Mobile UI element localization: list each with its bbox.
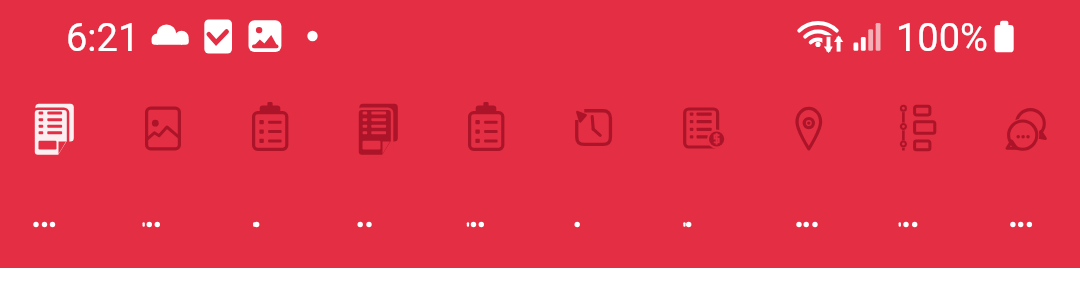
button[interactable]: Messages xyxy=(972,94,1080,236)
button[interactable]: History xyxy=(540,94,648,236)
staticText: 6:21 xyxy=(66,16,140,61)
button[interactable]: Invoices xyxy=(648,94,756,236)
button[interactable]: Places xyxy=(756,94,864,236)
button[interactable]: Timeline xyxy=(864,94,972,236)
button[interactable]: Notes xyxy=(324,94,432,236)
button[interactable]: Checklists xyxy=(216,94,324,236)
button[interactable]: Photos xyxy=(108,94,216,236)
button[interactable]: Documents xyxy=(0,94,108,236)
staticText: 100% xyxy=(896,16,988,61)
button[interactable]: Tasks xyxy=(432,94,540,236)
